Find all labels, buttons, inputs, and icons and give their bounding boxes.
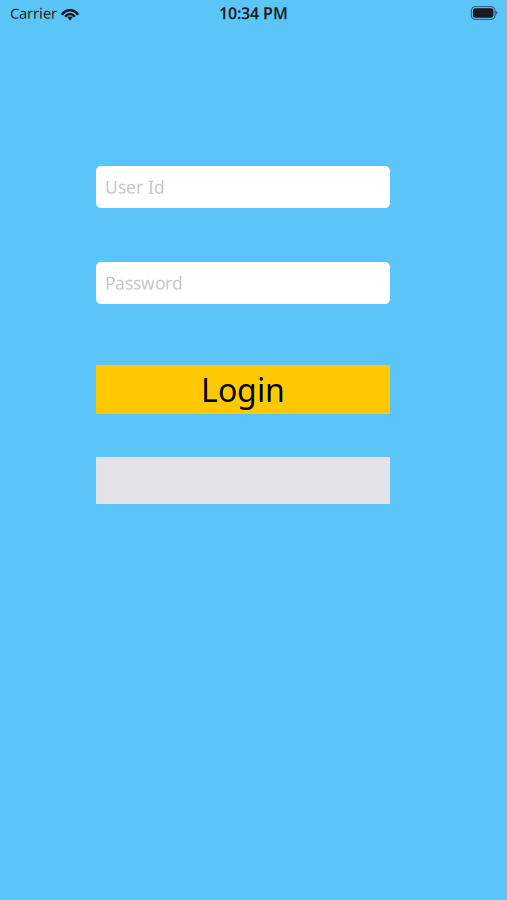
button[interactable]: Login	[96, 365, 390, 414]
button[interactable]: User Id	[96, 166, 390, 208]
staticText: Carrier	[10, 3, 57, 23]
staticText: Login	[201, 368, 285, 411]
staticText: Password	[105, 271, 183, 294]
button[interactable]: Password	[96, 262, 390, 304]
staticText: 10:34 PM	[219, 2, 288, 24]
staticText: User Id	[105, 175, 165, 198]
